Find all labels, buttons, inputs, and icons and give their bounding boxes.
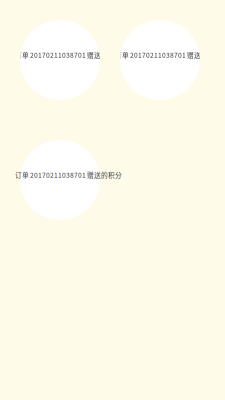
staticText: 订单 20170211038701 赠送的积分 xyxy=(115,50,222,60)
staticText: 订单 20170211038701 赠送的积分 xyxy=(15,50,122,60)
staticText: 订单 20170211038701 赠送的积分 xyxy=(15,170,122,180)
